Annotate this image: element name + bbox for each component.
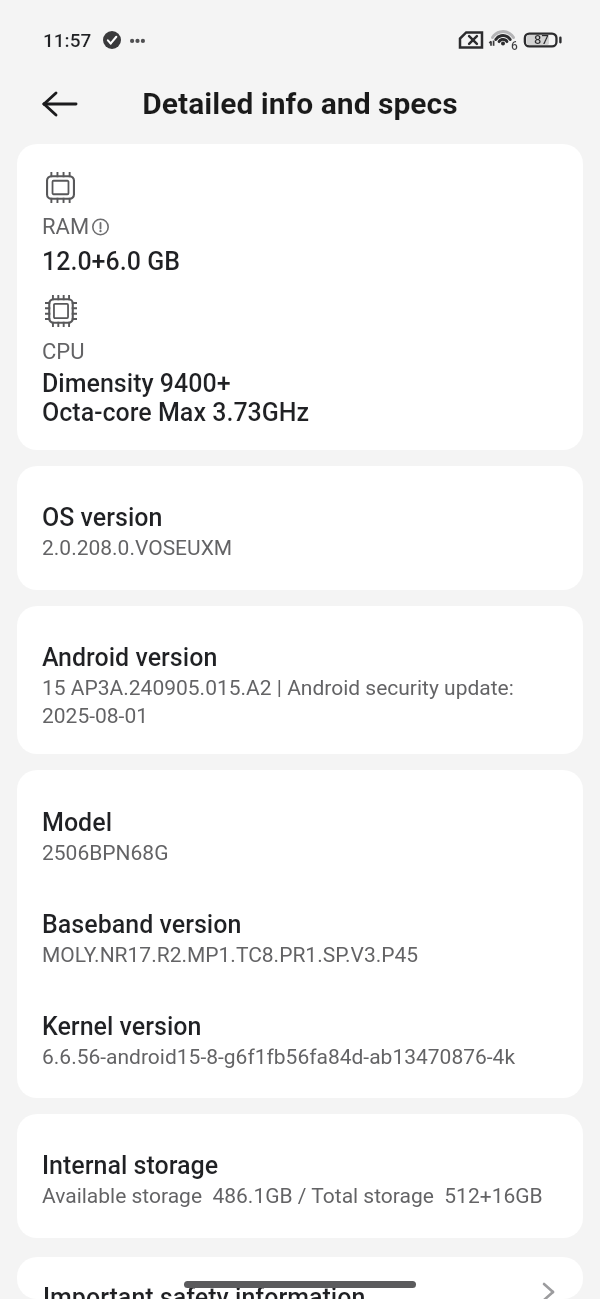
staticText: 6 [511,39,518,53]
button[interactable]: Important safety information [17,1257,583,1299]
staticText: Dimensity 9400+ Octa-core Max 3.73GHz [42,369,310,427]
staticText: MOLY.NR17.R2.MP1.TC8.PR1.SP.V3.P45 [42,943,419,968]
staticText: RAM [42,214,90,240]
staticText: Android version [42,643,218,672]
staticText: Kernel version [42,1012,202,1041]
staticText: 87 [534,32,549,47]
staticText: Internal storage [42,1151,219,1180]
staticText: 12.0+6.0 GB [42,247,180,276]
other: Open important safety information [542,1285,559,1299]
staticText: Detailed info and specs [142,86,458,121]
staticText: 15 AP3A.240905.015.A2 | Android security… [42,676,558,728]
staticText: 6.6.56-android15-8-g6f1fb56fa84d-ab13470… [42,1045,516,1070]
staticText: 2506BPN68G [42,841,169,866]
staticText: CPU [42,339,85,365]
staticText: Available storage 486.1GB / Total storag… [42,1184,543,1209]
staticText: Model [42,808,113,837]
staticText: 2.0.208.0.VOSEUXM [42,536,233,561]
staticText: OS version [42,503,163,532]
staticText: Important safety information [43,1283,366,1299]
staticText: 11:57 [43,29,92,51]
button[interactable]: Back [26,80,94,127]
staticText: Baseband version [42,910,242,939]
